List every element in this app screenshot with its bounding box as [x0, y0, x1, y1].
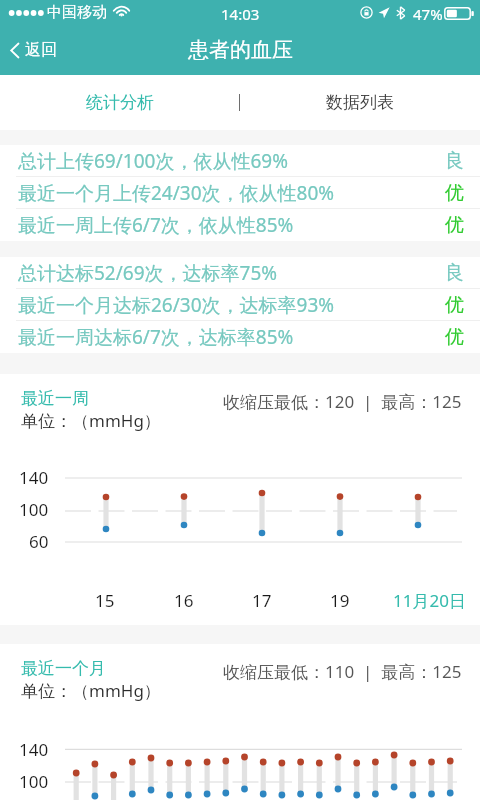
- button[interactable]: 最近一个月达标26/30次，达标率93%: [0, 289, 480, 321]
- staticText: 单位：（mmHg）: [21, 409, 161, 432]
- staticText: 140: [19, 738, 49, 761]
- staticText: 返回: [25, 40, 57, 60]
- button[interactable]: 统计分析: [0, 75, 239, 130]
- staticText: 最近一个月: [21, 658, 106, 679]
- staticText: 最近一周上传6/7次，依从性85%: [18, 212, 294, 238]
- staticText: 最近一个月达标26/30次，达标率93%: [18, 292, 335, 318]
- staticText: 总计达标52/69次，达标率75%: [18, 260, 278, 286]
- staticText: 良: [445, 261, 464, 285]
- button[interactable]: 数据列表: [240, 75, 480, 130]
- staticText: 优: [445, 181, 464, 205]
- button[interactable]: 总计上传69/100次，依从性69%: [0, 145, 480, 177]
- staticText: 优: [445, 213, 464, 237]
- staticText: 60: [29, 530, 49, 553]
- button[interactable]: 最近一周达标6/7次，达标率85%: [0, 321, 480, 353]
- staticText: 总计上传69/100次，依从性69%: [18, 148, 288, 174]
- staticText: 单位：（mmHg）: [21, 679, 161, 702]
- staticText: 最近一个月上传24/30次，依从性80%: [18, 180, 335, 206]
- staticText: 数据列表: [326, 92, 394, 113]
- staticText: 中国移动: [47, 3, 107, 22]
- staticText: 16: [174, 589, 194, 612]
- button[interactable]: 返回: [0, 34, 69, 66]
- staticText: 最近一周达标6/7次，达标率85%: [18, 324, 294, 350]
- staticText: 最近一周: [21, 388, 89, 409]
- staticText: 47%: [413, 4, 443, 24]
- staticText: 17: [252, 589, 272, 612]
- staticText: 良: [445, 149, 464, 173]
- staticText: 19: [330, 589, 350, 612]
- button[interactable]: 总计达标52/69次，达标率75%: [0, 257, 480, 289]
- staticText: 收缩压最低：110 | 最高：125: [223, 660, 462, 683]
- staticText: 14:03: [221, 4, 260, 24]
- staticText: 统计分析: [86, 92, 154, 113]
- staticText: 100: [19, 770, 49, 793]
- staticText: 100: [19, 498, 49, 521]
- staticText: 140: [19, 466, 49, 489]
- staticText: 患者的血压: [188, 37, 293, 63]
- button[interactable]: 最近一周上传6/7次，依从性85%: [0, 209, 480, 241]
- staticText: 优: [445, 325, 464, 349]
- button[interactable]: 最近一个月上传24/30次，依从性80%: [0, 177, 480, 209]
- staticText: 15: [95, 589, 115, 612]
- staticText: 11月20日: [393, 589, 466, 612]
- staticText: 优: [445, 293, 464, 317]
- staticText: 收缩压最低：120 | 最高：125: [223, 390, 462, 413]
